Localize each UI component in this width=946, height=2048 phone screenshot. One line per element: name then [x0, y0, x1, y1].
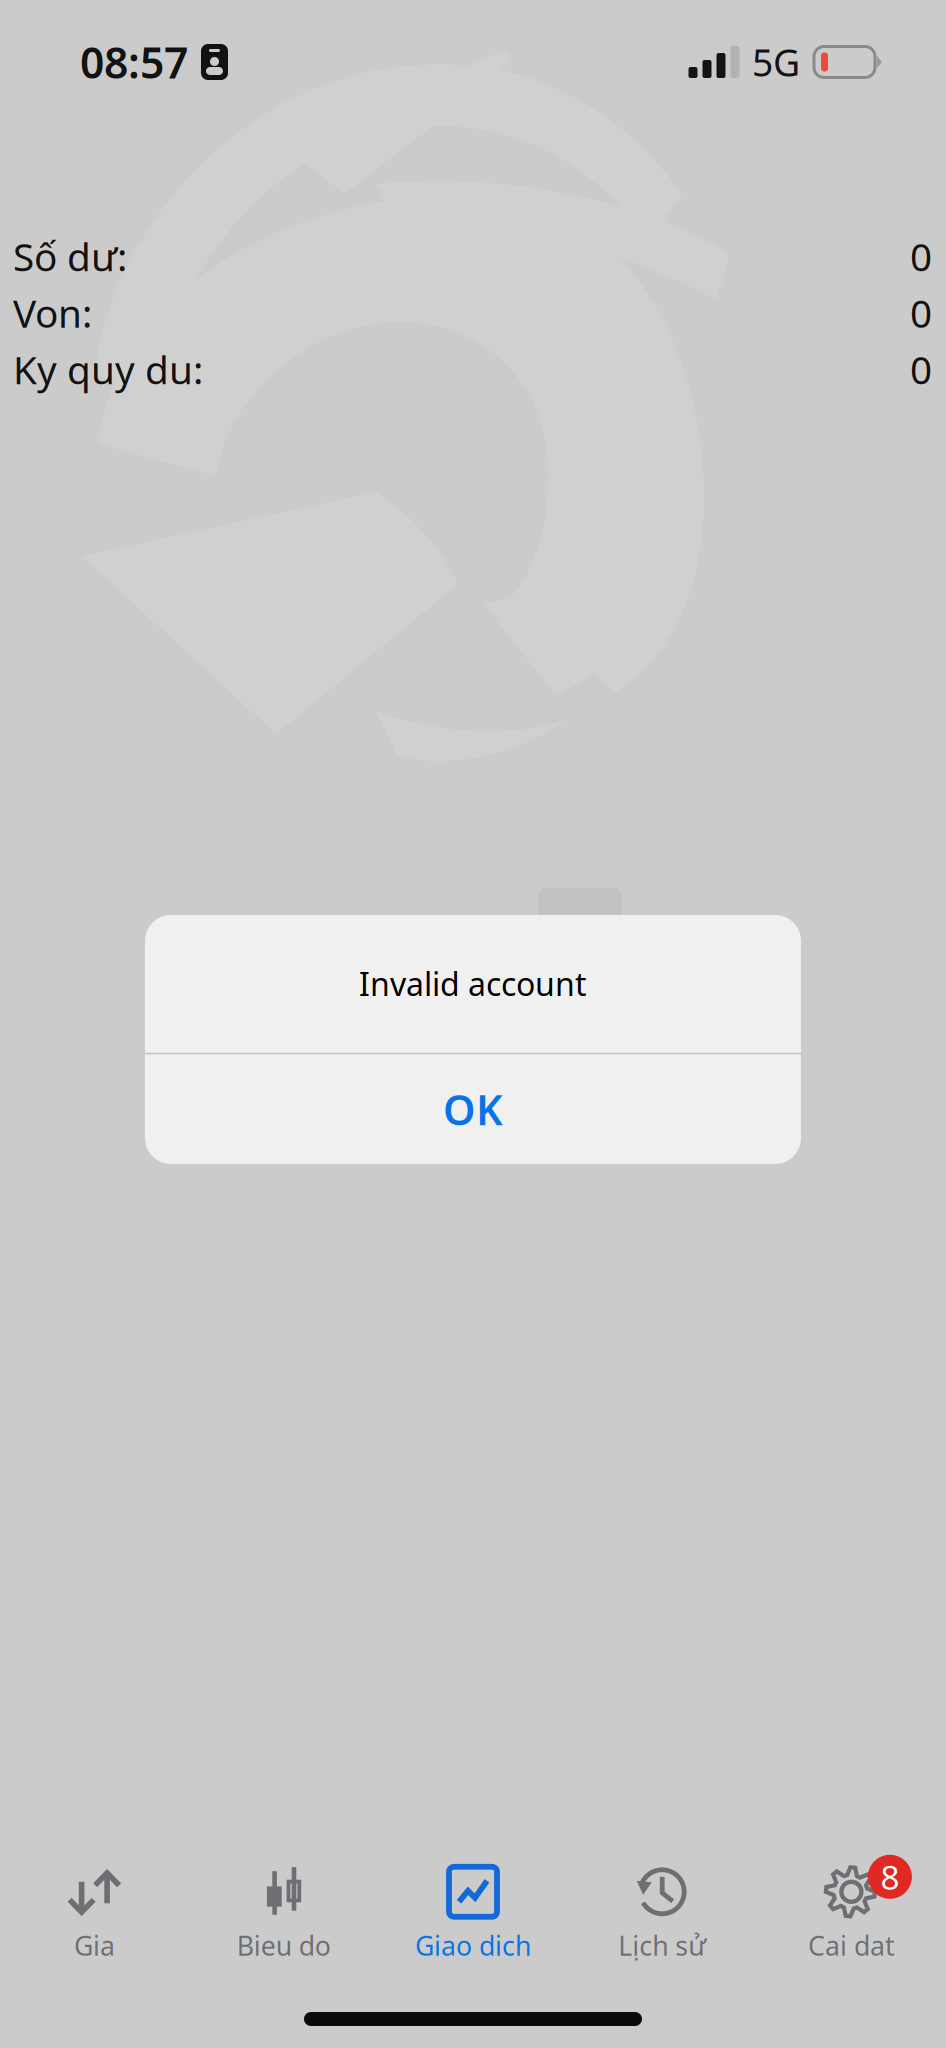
staticText: 5G [752, 37, 800, 87]
staticText: 8 [880, 1855, 899, 1899]
staticText: Von: [13, 287, 92, 338]
staticText: OK [443, 1082, 503, 1137]
button[interactable]: Gia [0, 1861, 189, 1963]
staticText: 08:57 [80, 34, 188, 90]
button[interactable]: 8 [757, 1861, 946, 1963]
staticText: Số dư: [13, 231, 127, 282]
staticText: Ky quy du: [13, 344, 203, 395]
staticText: Lịch sử [618, 1928, 706, 1963]
button[interactable]: Giao dich [378, 1861, 568, 1963]
staticText: Giao dich [415, 1928, 531, 1963]
staticText: Invalid account [359, 962, 587, 1005]
button[interactable]: Lịch sử [568, 1861, 757, 1963]
button[interactable]: OK [145, 1054, 801, 1164]
button[interactable]: Bieu do [189, 1861, 378, 1963]
staticText: Bieu do [237, 1928, 331, 1963]
staticText: Gia [74, 1928, 115, 1963]
staticText: 0 [910, 287, 932, 338]
staticText: Cai dat [808, 1928, 895, 1963]
staticText: 0 [910, 231, 932, 282]
staticText: 0 [910, 344, 932, 395]
